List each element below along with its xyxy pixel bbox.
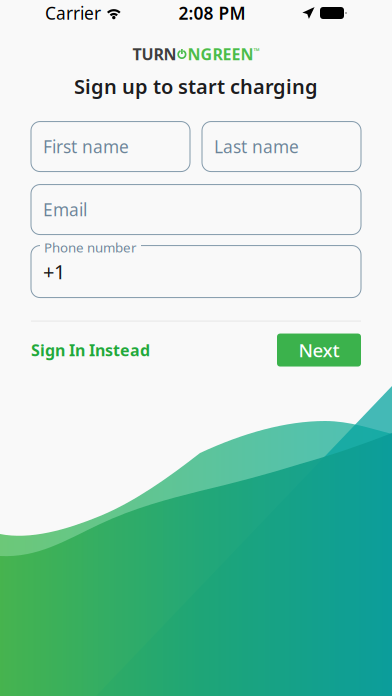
- staticText: First name: [43, 135, 129, 158]
- staticText: Email: [43, 198, 87, 221]
- staticText: Sign up to start charging: [74, 73, 318, 100]
- staticText: 2:08 PM: [178, 1, 245, 24]
- staticText: TURN: [132, 43, 176, 65]
- button[interactable]: Next: [277, 334, 361, 367]
- staticText: Next: [298, 338, 339, 362]
- staticText: Sign In Instead: [31, 339, 150, 361]
- staticText: NGREEN: [187, 43, 253, 65]
- staticText: ™: [253, 46, 259, 56]
- staticText: +1: [43, 258, 65, 285]
- staticText: Carrier: [45, 1, 101, 24]
- button[interactable]: Sign In Instead: [31, 334, 150, 367]
- staticText: Phone number: [44, 239, 137, 256]
- staticText: Last name: [214, 135, 299, 158]
